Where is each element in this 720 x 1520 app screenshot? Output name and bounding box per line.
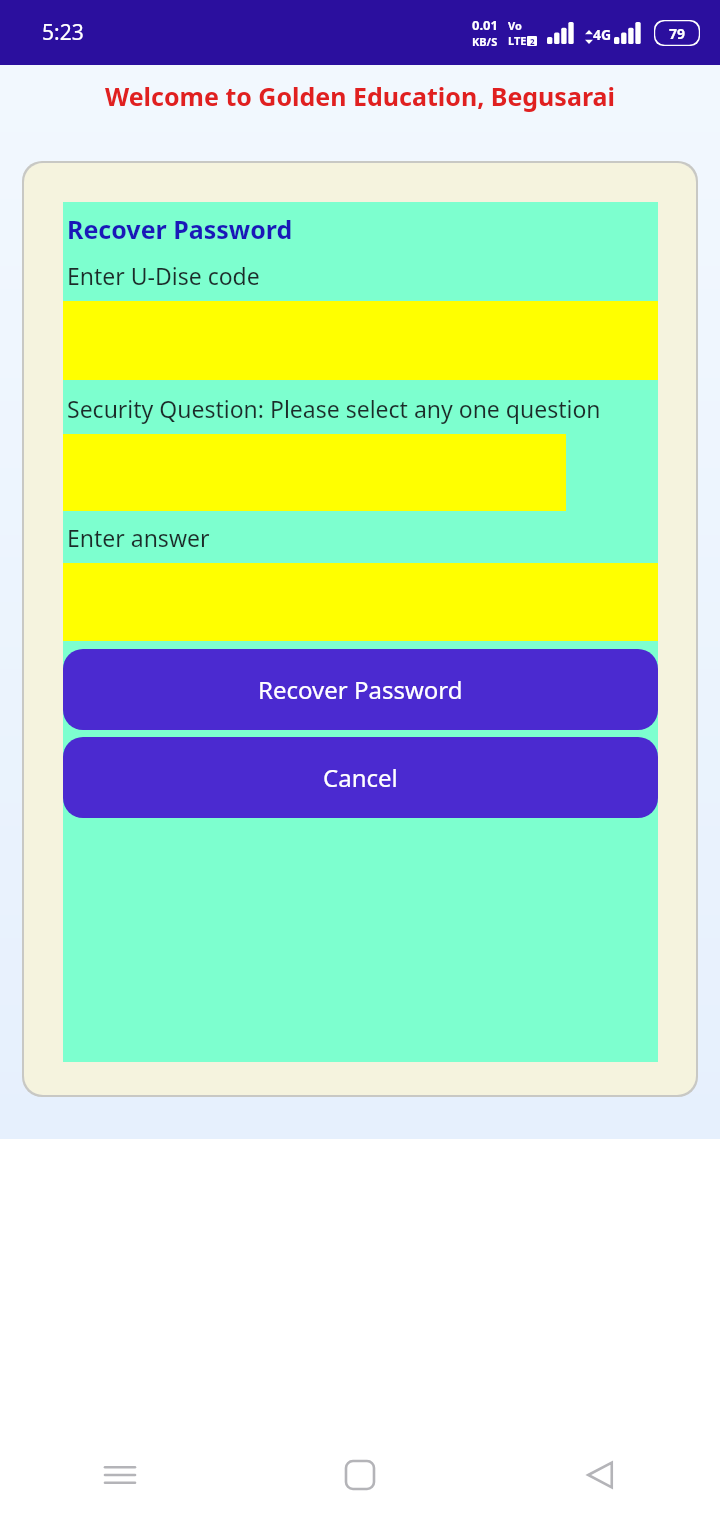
staticText: Cancel	[323, 761, 398, 794]
staticText: Recover Password	[67, 212, 293, 246]
button[interactable]: Back	[480, 1430, 720, 1520]
staticText: Vo	[508, 18, 522, 33]
staticText: Welcome to Golden Education, Begusarai	[105, 79, 616, 113]
staticText: 4G	[593, 25, 612, 44]
staticText: 79	[669, 24, 686, 43]
staticText: Security Question: Please select any one…	[67, 393, 601, 424]
staticText: 5:23	[42, 18, 84, 47]
button[interactable]: Cancel	[63, 737, 658, 818]
staticText: KB/S	[472, 34, 498, 49]
staticText: LTE	[508, 33, 527, 48]
button[interactable]: Home	[240, 1430, 480, 1520]
staticText: Enter answer	[67, 522, 210, 553]
staticText: 0.01	[472, 16, 498, 34]
staticText: Recover Password	[258, 673, 463, 706]
button[interactable]: Recover Password	[63, 649, 658, 730]
button[interactable]: Recent apps	[0, 1430, 240, 1520]
staticText: 2	[530, 36, 535, 46]
staticText: Enter U-Dise code	[67, 260, 260, 291]
